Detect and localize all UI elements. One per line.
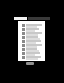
button[interactable] — [18, 32, 45, 36]
button[interactable] — [18, 40, 45, 44]
button[interactable] — [18, 24, 45, 28]
button[interactable] — [18, 36, 45, 40]
button[interactable] — [18, 56, 45, 60]
button[interactable] — [18, 44, 45, 48]
button[interactable] — [18, 52, 45, 56]
button[interactable] — [26, 62, 34, 65]
button[interactable] — [18, 28, 45, 32]
button[interactable] — [18, 48, 45, 52]
